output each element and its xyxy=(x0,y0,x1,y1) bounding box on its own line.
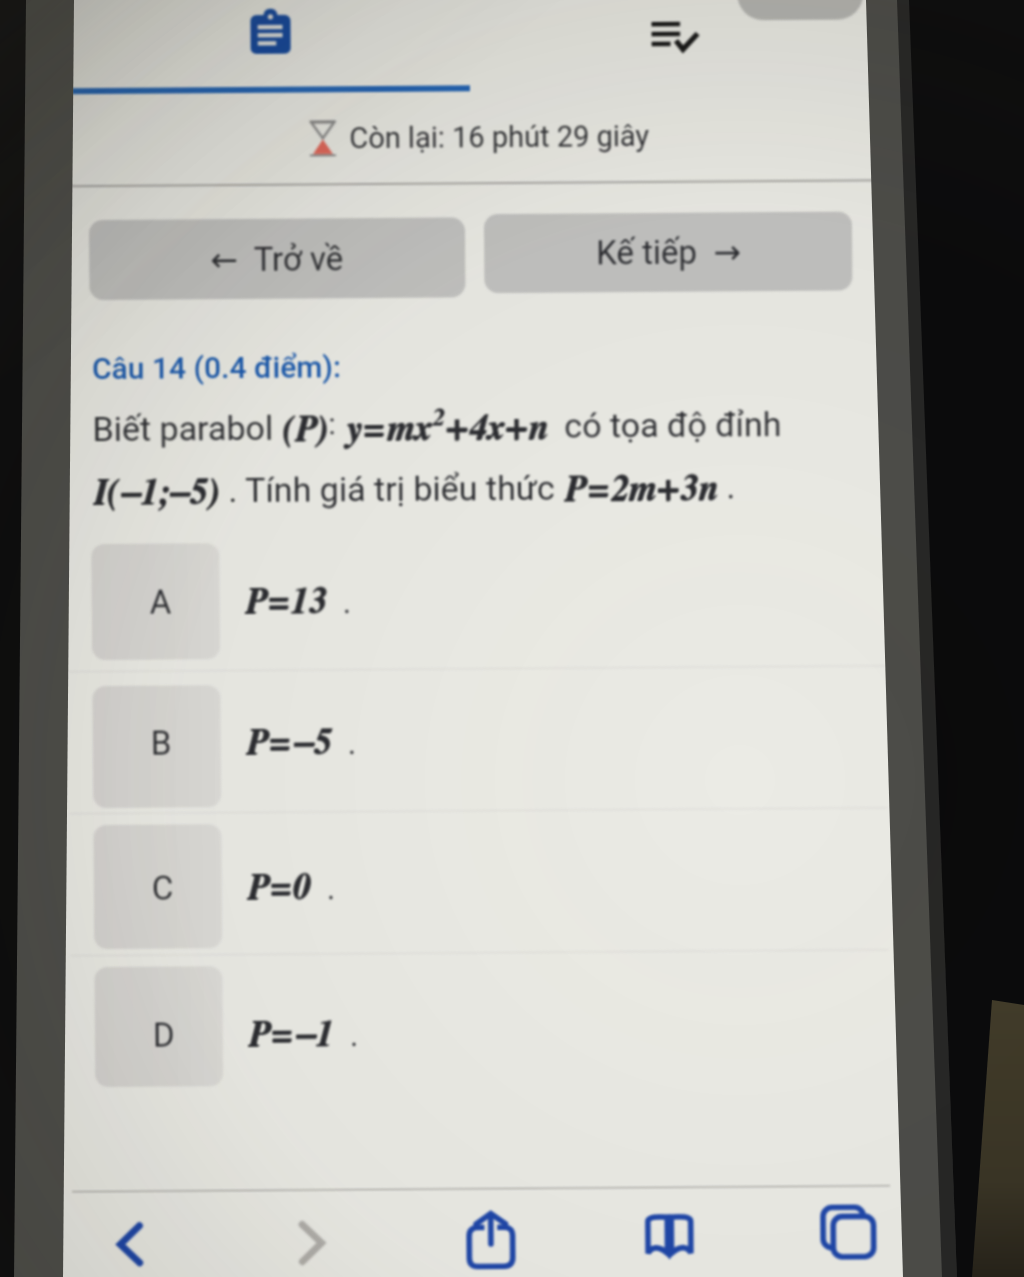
staticText: P=−5 xyxy=(246,724,332,761)
staticText: = xyxy=(362,411,388,447)
staticText: P=13 xyxy=(245,584,327,621)
button[interactable] xyxy=(67,520,886,682)
staticText: Còn lại: 16 phút 29 giây xyxy=(349,119,649,155)
button[interactable]: Tabs xyxy=(809,1189,893,1262)
staticText: +4x+n xyxy=(444,410,548,446)
staticText: P=−5 xyxy=(246,725,332,762)
staticText: 2 xyxy=(431,405,444,431)
staticText: P=0 xyxy=(248,869,312,906)
staticText: +4x+n xyxy=(444,411,548,447)
staticText: (−1;−5) xyxy=(107,475,220,512)
staticText: (P) xyxy=(283,411,330,448)
button[interactable]: Nộp bài xyxy=(645,8,704,66)
button[interactable]: Back xyxy=(90,1194,175,1267)
staticText: I xyxy=(93,475,107,511)
staticText: =2m+3n xyxy=(586,471,718,508)
staticText: (−1;−5) xyxy=(107,474,220,511)
staticText: I xyxy=(94,475,108,511)
staticText: P xyxy=(564,471,586,508)
staticText: P xyxy=(565,471,587,508)
button[interactable]: Kế tiếp → xyxy=(484,211,852,293)
staticText: I xyxy=(93,476,107,512)
staticText: P xyxy=(564,472,586,509)
staticText: có tọa độ đỉnh xyxy=(547,404,782,446)
staticText: Biết parabol xyxy=(92,408,283,449)
staticText: P=−5 xyxy=(247,724,333,761)
button[interactable]: Bookmarks xyxy=(631,1190,716,1263)
staticText: y xyxy=(336,411,362,447)
staticText: 2 xyxy=(432,405,445,431)
staticText: Kế tiếp → xyxy=(596,232,741,272)
button[interactable] xyxy=(69,801,888,971)
staticText: = xyxy=(361,412,387,448)
button[interactable]: Forward xyxy=(269,1193,354,1266)
staticText: . xyxy=(332,728,357,760)
staticText: P=0 xyxy=(247,869,311,906)
staticText: =2m+3n xyxy=(586,470,718,507)
button[interactable]: ← Trở về xyxy=(89,217,465,300)
staticText: +4x+n xyxy=(445,410,549,446)
button[interactable] xyxy=(68,662,887,830)
staticText: . xyxy=(334,1020,359,1052)
staticText: (−1;−5) xyxy=(108,474,221,511)
staticText: P=13 xyxy=(246,583,328,620)
staticText: y xyxy=(336,412,362,448)
staticText: . Tính giá trị biểu thức xyxy=(220,468,564,510)
staticText: B xyxy=(151,723,172,763)
staticText: D xyxy=(153,1015,175,1055)
staticText: C xyxy=(152,868,174,908)
staticText: mx xyxy=(387,411,433,447)
staticText: . xyxy=(327,587,352,619)
button[interactable]: Share xyxy=(451,1192,536,1264)
staticText: P=0 xyxy=(247,870,311,907)
staticText: mx xyxy=(386,412,432,448)
button[interactable]: Danh sách câu hỏi xyxy=(240,0,301,61)
staticText: =2m+3n xyxy=(587,470,719,507)
staticText: P=−1 xyxy=(249,1016,335,1053)
staticText: P=−1 xyxy=(248,1017,334,1054)
staticText: = xyxy=(361,411,387,447)
staticText: ← Trở về xyxy=(210,239,344,279)
staticText: . xyxy=(718,466,736,506)
staticText: P=13 xyxy=(245,583,327,620)
staticText: mx xyxy=(386,411,432,447)
staticText: (P) xyxy=(282,411,329,448)
staticText: : xyxy=(328,406,337,441)
staticText: A xyxy=(150,582,172,622)
staticText: P=−1 xyxy=(248,1016,334,1053)
staticText: y xyxy=(337,411,363,447)
staticText: Câu 14 (0.4 điểm): xyxy=(92,349,341,386)
button[interactable] xyxy=(70,943,889,1109)
staticText: (P) xyxy=(282,412,329,449)
staticText: . xyxy=(311,873,336,905)
